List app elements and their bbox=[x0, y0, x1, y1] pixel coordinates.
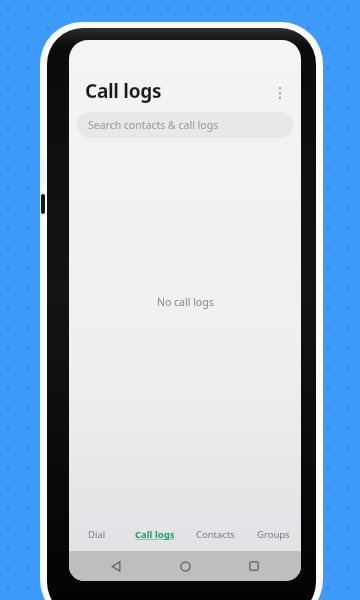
button[interactable]: Call logs bbox=[124, 517, 185, 551]
button[interactable]: Groups bbox=[246, 517, 301, 551]
staticText: Dial bbox=[88, 528, 106, 541]
button[interactable]: Dial bbox=[69, 517, 124, 551]
staticText: Call logs bbox=[135, 528, 175, 541]
staticText: No call logs bbox=[157, 295, 214, 309]
button[interactable]: Search contacts & call logs bbox=[77, 112, 293, 138]
button[interactable]: Back bbox=[105, 555, 127, 577]
staticText: Call logs bbox=[85, 78, 162, 104]
button[interactable]: Contacts bbox=[185, 517, 246, 551]
button[interactable]: Recents bbox=[243, 555, 265, 577]
button[interactable]: More options bbox=[268, 81, 292, 105]
staticText: Groups bbox=[257, 528, 290, 541]
button[interactable]: Home bbox=[174, 555, 196, 577]
staticText: Search contacts & call logs bbox=[88, 118, 219, 132]
staticText: Contacts bbox=[196, 528, 235, 541]
